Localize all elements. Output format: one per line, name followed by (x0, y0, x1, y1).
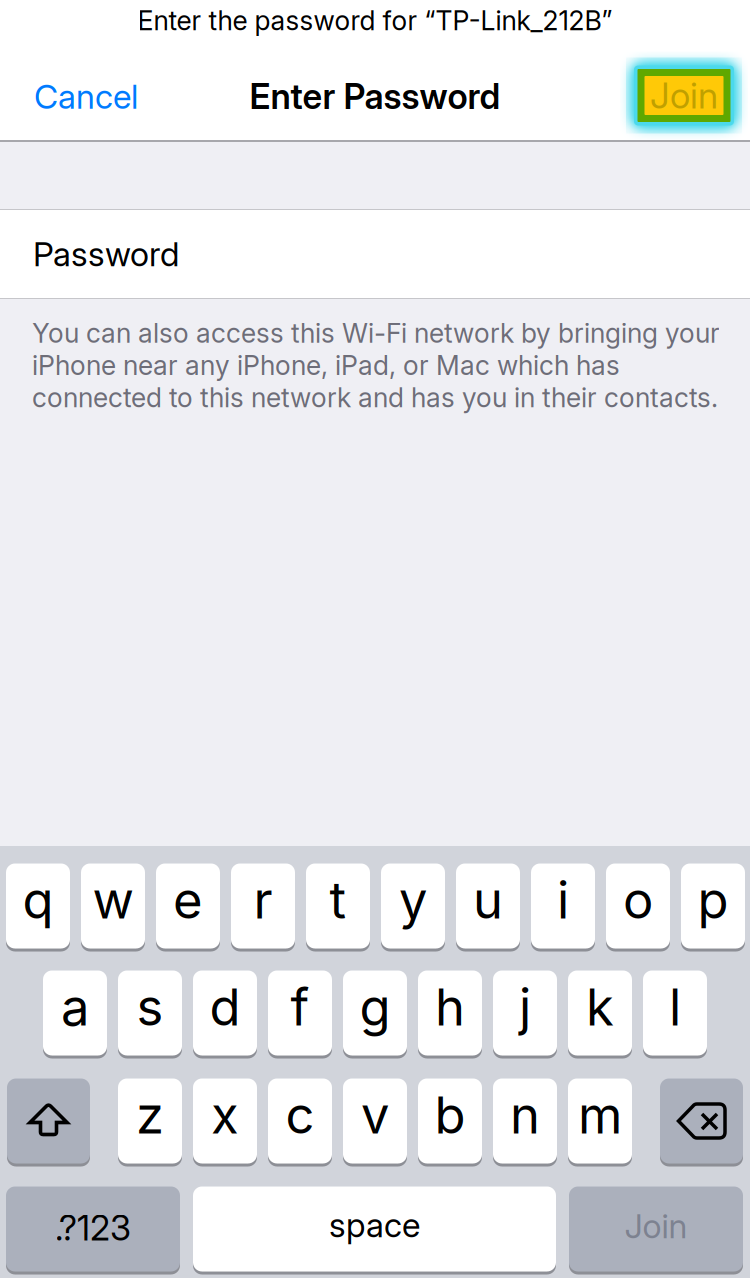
button[interactable]: q (6, 862, 70, 950)
staticText: g (359, 976, 390, 1038)
button[interactable]: t (306, 862, 370, 950)
button[interactable]: Cancel (0, 55, 194, 140)
staticText: v (361, 1084, 389, 1146)
button[interactable]: w (81, 862, 145, 950)
button[interactable]: u (456, 862, 520, 950)
staticText: z (136, 1084, 164, 1146)
staticText: w (92, 869, 133, 931)
staticText: l (669, 976, 681, 1038)
staticText: b (434, 1084, 465, 1146)
staticText: c (285, 1084, 314, 1146)
staticText: u (473, 869, 503, 931)
staticText: Enter Password (249, 75, 500, 117)
button[interactable]: m (568, 1077, 632, 1165)
staticText: k (586, 976, 614, 1038)
staticText: m (578, 1084, 622, 1146)
staticText: Enter the password for “TP-Link_212B” (137, 4, 612, 37)
button[interactable]: Join (569, 1185, 743, 1273)
staticText: q (22, 869, 53, 931)
staticText: Join (624, 1206, 687, 1246)
staticText: s (136, 976, 163, 1038)
staticText: r (253, 869, 272, 931)
button[interactable]: Delete (660, 1077, 743, 1165)
button[interactable]: b (418, 1077, 482, 1165)
button[interactable]: n (493, 1077, 557, 1165)
button[interactable]: a (43, 969, 107, 1057)
button[interactable]: j (493, 969, 557, 1057)
staticText: x (211, 1084, 239, 1146)
button[interactable]: Shift (7, 1077, 90, 1165)
staticText: j (519, 976, 531, 1038)
staticText: y (399, 869, 427, 931)
button[interactable]: o (606, 862, 670, 950)
staticText: d (209, 976, 240, 1038)
button[interactable]: v (343, 1077, 407, 1165)
button[interactable]: Password (0, 210, 750, 298)
button[interactable]: Join (612, 53, 750, 138)
staticText: Password (33, 234, 179, 274)
staticText: Cancel (34, 76, 138, 117)
staticText: h (435, 976, 465, 1038)
staticText: .?123 (55, 1207, 131, 1249)
button[interactable]: x (193, 1077, 257, 1165)
button[interactable]: p (681, 862, 745, 950)
staticText: p (697, 869, 728, 931)
staticText: You can also access this Wi-Fi network b… (32, 317, 720, 414)
staticText: e (173, 869, 203, 931)
button[interactable]: e (156, 862, 220, 950)
staticText: Join (650, 74, 718, 117)
button[interactable]: f (268, 969, 332, 1057)
staticText: f (290, 976, 309, 1038)
button[interactable]: h (418, 969, 482, 1057)
button[interactable]: s (118, 969, 182, 1057)
staticText: t (329, 869, 346, 931)
button[interactable]: z (118, 1077, 182, 1165)
staticText: space (329, 1205, 420, 1245)
button[interactable]: r (231, 862, 295, 950)
button[interactable]: d (193, 969, 257, 1057)
staticText: o (623, 869, 653, 931)
button[interactable]: i (531, 862, 595, 950)
staticText: i (557, 869, 569, 931)
button[interactable]: .?123 (6, 1185, 180, 1273)
button[interactable]: l (643, 969, 707, 1057)
button[interactable]: space (193, 1185, 556, 1273)
button[interactable]: c (268, 1077, 332, 1165)
button[interactable]: g (343, 969, 407, 1057)
staticText: n (510, 1084, 540, 1146)
button[interactable]: k (568, 969, 632, 1057)
staticText: a (61, 976, 89, 1038)
button[interactable]: y (381, 862, 445, 950)
